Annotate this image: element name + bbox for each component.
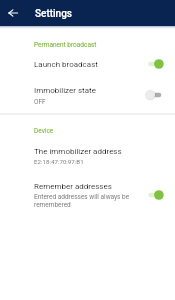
- staticText: E2:18:47:70:97:B1: [34, 158, 84, 165]
- staticText: Permanent broadcast: [34, 41, 97, 49]
- staticText: Settings: [35, 8, 73, 20]
- staticText: Remember addresses: [34, 182, 112, 191]
- staticText: Device: [34, 127, 54, 135]
- button[interactable]: [0, 142, 175, 168]
- staticText: Launch broadcast: [34, 60, 98, 69]
- staticText: OFF: [34, 98, 46, 106]
- button[interactable]: [0, 82, 175, 110]
- staticText: remembered: [34, 201, 71, 209]
- button[interactable]: Switch on: [142, 185, 168, 205]
- button[interactable]: [0, 55, 175, 81]
- staticText: Entered addresses will always be: [34, 193, 130, 201]
- button[interactable]: Switch off: [142, 85, 168, 105]
- button[interactable]: Switch on: [142, 54, 168, 74]
- button[interactable]: [0, 177, 175, 211]
- button[interactable]: Navigate up: [2, 2, 24, 24]
- staticText: The immobilizer address: [34, 147, 122, 156]
- staticText: Immobilizer state: [34, 86, 96, 95]
